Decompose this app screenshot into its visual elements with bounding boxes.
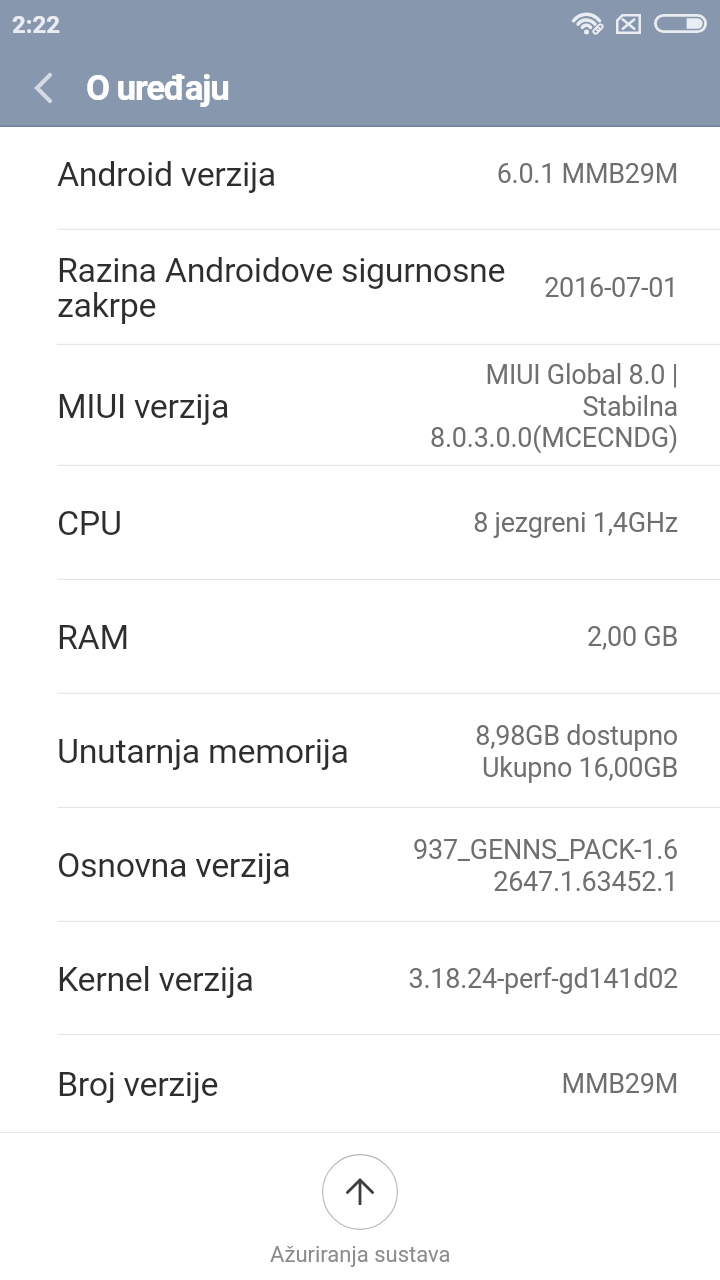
staticText: 6.0.1 MMB29M [496, 158, 678, 190]
staticText: O uređaju [86, 68, 229, 109]
staticText: Ažuriranja sustava [270, 1242, 451, 1268]
staticText: Osnovna verzija [57, 845, 291, 885]
staticText: Razina Androidove sigurnosne zakrpe [57, 250, 519, 325]
staticText: 2016-07-01 [544, 272, 678, 304]
staticText: 937_GENNS_PACK-1.6 2647.1.63452.1 [413, 834, 678, 897]
staticText: 2:22 [12, 11, 61, 39]
button[interactable]: Unutarnja memorija [0, 694, 720, 808]
staticText: 8,98GB dostupno Ukupno 16,00GB [475, 720, 678, 783]
staticText: 2,00 GB [587, 621, 678, 653]
staticText: MIUI verzija [57, 386, 230, 426]
staticText: CPU [57, 503, 122, 543]
button[interactable]: MIUI verzija [0, 345, 720, 466]
button[interactable]: Android verzija [0, 127, 720, 230]
button[interactable]: RAM [0, 580, 720, 694]
staticText: RAM [57, 617, 129, 657]
button[interactable]: Broj verzije [0, 1035, 720, 1133]
staticText: MMB29M [561, 1068, 678, 1100]
button[interactable]: Back [0, 48, 86, 127]
button[interactable]: Osnovna verzija [0, 808, 720, 922]
button[interactable]: Kernel verzija [0, 922, 720, 1035]
button[interactable]: Razina Androidove sigurnosne zakrpe [0, 230, 720, 345]
staticText: 8 jezgreni 1,4GHz [473, 507, 678, 539]
staticText: MIUI Global 8.0 | Stabilna 8.0.3.0.0(MCE… [430, 359, 678, 453]
button[interactable]: CPU [0, 466, 720, 580]
button[interactable]: Ažuriranja sustava [0, 1133, 720, 1280]
staticText: Kernel verzija [57, 959, 254, 999]
staticText: Android verzija [57, 154, 276, 194]
staticText: Broj verzije [57, 1064, 219, 1104]
staticText: Unutarnja memorija [57, 731, 349, 771]
staticText: 3.18.24-perf-gd141d02 [408, 963, 678, 995]
